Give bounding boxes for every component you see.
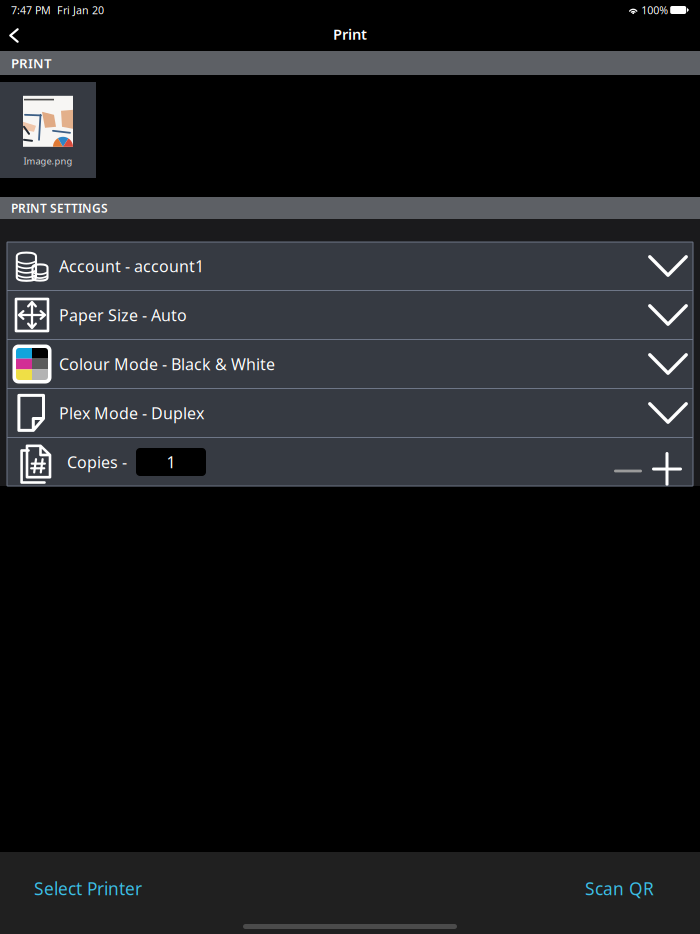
staticText: Copies -	[67, 451, 127, 473]
button[interactable]: Decrease copies	[606, 442, 650, 482]
button[interactable]: Increase copies	[650, 439, 693, 485]
button[interactable]: Plex Mode - Duplex	[7, 389, 693, 437]
button[interactable]: Account - account1	[7, 242, 693, 290]
button[interactable]: Scan QR	[573, 866, 666, 911]
staticText: Print	[333, 24, 367, 44]
staticText: Plex Mode - Duplex	[59, 402, 204, 424]
staticText: Select Printer	[34, 877, 142, 900]
staticText: Fri Jan 20	[57, 3, 104, 17]
staticText: Account - account1	[59, 255, 204, 277]
staticText: 1	[166, 451, 175, 473]
button[interactable]: Select Printer	[22, 866, 154, 911]
button[interactable]: Back	[0, 20, 33, 51]
staticText: 100%	[641, 3, 668, 17]
button[interactable]: Paper Size - Auto	[7, 291, 693, 339]
staticText: Scan QR	[585, 877, 654, 900]
staticText: Colour Mode - Black & White	[59, 353, 275, 375]
staticText: PRINT	[11, 54, 52, 72]
button[interactable]: Image.png	[0, 82, 96, 178]
button[interactable]: Colour Mode - Black & White	[7, 340, 693, 388]
staticText: Paper Size - Auto	[59, 304, 187, 326]
staticText: 7:47 PM	[11, 3, 51, 17]
staticText: PRINT SETTINGS	[11, 200, 108, 216]
staticText: Image.png	[23, 155, 72, 167]
